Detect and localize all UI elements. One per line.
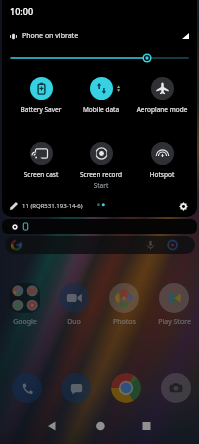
button[interactable]: Edit tiles [10,202,18,210]
staticText: Aeroplane mode [131,105,193,114]
button[interactable]: Settings [178,201,189,212]
button[interactable]: Screen cast [10,142,72,179]
button[interactable]: Chrome [101,373,151,403]
staticText: Battery Saver [10,105,72,114]
button[interactable]: Phone [2,373,51,403]
staticText: Screen cast [10,170,72,179]
staticText: 10:00 [10,5,34,17]
button[interactable] [2,51,197,67]
button[interactable]: Google [0,283,49,327]
button[interactable]: Messages [51,373,101,403]
button[interactable]: Mobile data [70,77,132,114]
other: Expand [181,32,189,40]
button[interactable]: Play Store [149,283,199,327]
staticText: Mobile data [70,105,132,114]
button[interactable]: Recents [134,414,158,438]
staticText: Start [70,181,132,190]
button[interactable]: Home [88,414,112,438]
button[interactable]: Aeroplane mode [131,77,193,114]
button[interactable]: Hotspot [131,142,193,179]
staticText: Phone on vibrate [22,31,79,41]
staticText: Hotspot [131,170,193,179]
staticText: 11 (RQR531.193-14-6) [22,202,83,210]
button[interactable] [5,236,195,254]
button[interactable]: Photos [99,283,149,327]
staticText: Play Store [158,317,191,327]
staticText: Screen record [70,170,132,179]
button[interactable]: Battery Saver [10,77,72,114]
button[interactable]: Screen record [70,142,132,190]
button[interactable]: Camera [151,373,199,403]
button[interactable]: Back [40,414,64,438]
staticText: Photos [113,317,136,327]
button[interactable]: Duo [49,283,99,327]
staticText: Duo [67,317,81,327]
staticText: Google [13,317,37,327]
